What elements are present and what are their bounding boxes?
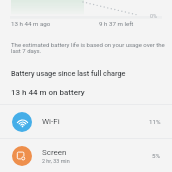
button[interactable]: Screen	[0, 139, 172, 172]
staticText: 0%	[150, 13, 158, 19]
staticText: Screen	[42, 148, 67, 157]
staticText: Wi-Fi	[42, 117, 60, 126]
staticText: 11%	[149, 118, 161, 125]
other: Wi-Fi	[16, 116, 29, 129]
staticText: 2 hr, 33 min	[42, 158, 70, 164]
staticText: The estimated battery life is based on y…	[11, 41, 168, 55]
staticText: 13 h 44 m ago	[11, 20, 51, 27]
other: Screen	[12, 146, 32, 166]
button[interactable]: Wi-Fi	[0, 105, 172, 138]
staticText: Battery usage since last full charge	[11, 69, 126, 78]
staticText: 5%	[152, 152, 161, 159]
staticText: 13 h 44 m on battery	[11, 88, 85, 97]
staticText: 9 h 37 m left	[99, 20, 134, 27]
